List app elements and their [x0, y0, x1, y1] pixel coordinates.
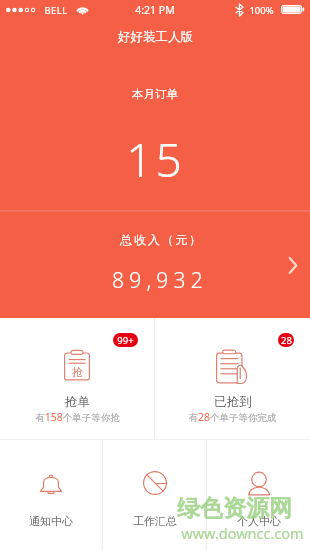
staticText: 通知中心	[29, 514, 73, 528]
button[interactable]: 已抢到	[155, 318, 310, 439]
button[interactable]: 工作汇总	[103, 440, 206, 550]
staticText: 抢单	[65, 394, 90, 410]
staticText: 本月订单	[132, 87, 178, 101]
staticText: 15	[126, 128, 185, 191]
staticText: 有28个单子等你完成	[188, 410, 277, 424]
staticText: BELL	[44, 4, 68, 17]
staticText: 已抢到	[214, 394, 252, 410]
staticText: 抢	[72, 365, 83, 379]
staticText: 绿色资源网	[177, 494, 292, 523]
staticText: 100%	[249, 4, 274, 17]
button[interactable]: 抢	[0, 318, 154, 439]
staticText: 工作汇总	[133, 514, 177, 528]
staticText: 总收入（元）	[120, 232, 203, 247]
staticText: 28	[281, 334, 292, 347]
button[interactable]: 个人中心	[207, 440, 310, 550]
staticText: 89,932	[112, 266, 208, 295]
staticText: www.downcc.com	[181, 523, 304, 543]
staticText: 好好装工人版	[118, 29, 193, 45]
button[interactable]: 查看总收入明细	[277, 249, 309, 281]
button[interactable]: 通知中心	[0, 440, 102, 550]
staticText: 99+	[117, 334, 134, 347]
staticText: 个人中心	[237, 514, 281, 528]
staticText: 有158个单子等你抢	[35, 410, 120, 424]
staticText: 4:21 PM	[135, 3, 175, 17]
